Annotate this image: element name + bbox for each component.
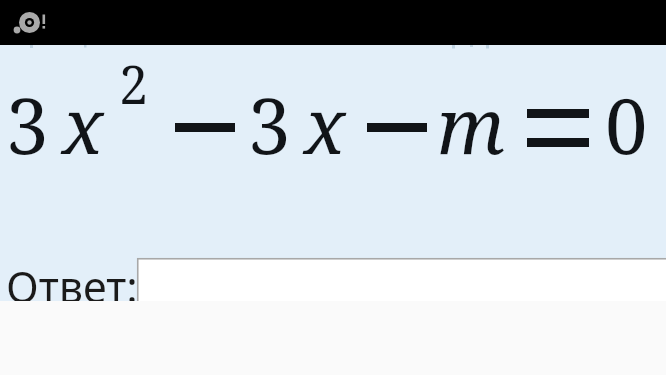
button[interactable]: App icon	[14, 8, 50, 38]
staticText: 2	[119, 48, 149, 119]
staticText: 0	[605, 73, 648, 177]
button[interactable]: Answer input field	[137, 258, 666, 312]
staticText: m	[437, 73, 506, 177]
staticText: x	[62, 73, 104, 177]
staticText: 3	[6, 73, 49, 177]
staticText: 3	[248, 73, 291, 177]
staticText: Ответ:	[6, 257, 138, 316]
staticText: x	[304, 73, 346, 177]
